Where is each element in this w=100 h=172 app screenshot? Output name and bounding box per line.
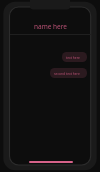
button[interactable]: text here (62, 52, 87, 62)
button[interactable]: name here (10, 20, 91, 32)
staticText: text here (66, 55, 80, 59)
staticText: name here (34, 22, 68, 31)
button[interactable]: second text here (50, 68, 87, 78)
staticText: second text here (54, 71, 80, 75)
button[interactable]: Home indicator (10, 158, 91, 166)
